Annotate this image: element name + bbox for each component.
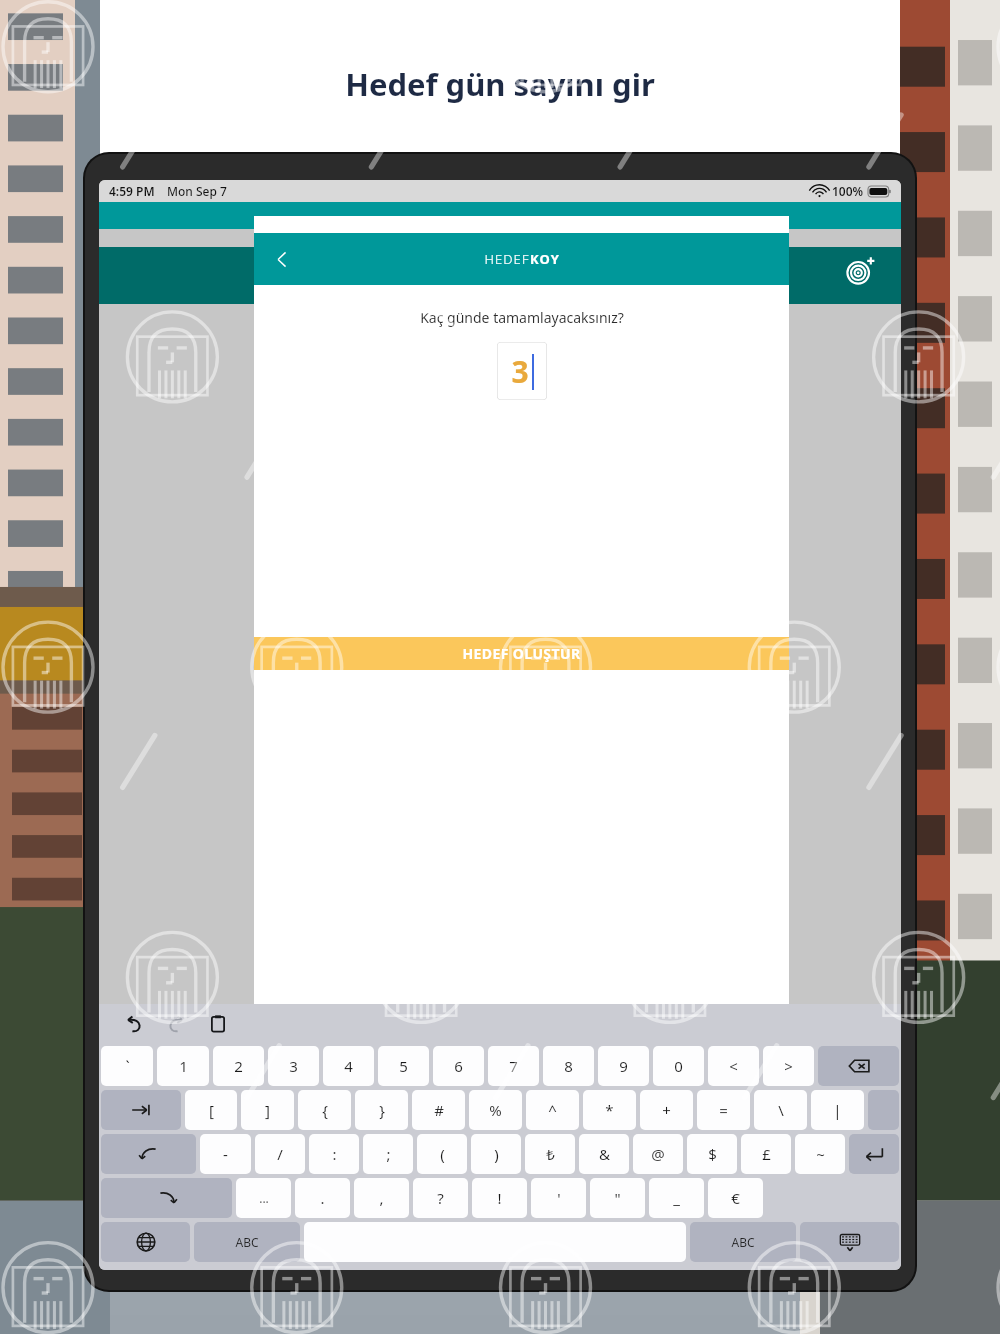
button[interactable]: ABC [194,1222,300,1262]
staticText: < [729,1056,738,1076]
button[interactable]: ABC [690,1222,796,1262]
staticText: 1 [179,1056,188,1076]
button[interactable]: ... [236,1178,291,1218]
staticText: Mon Sep 7 [167,183,227,199]
staticText: [ [209,1100,214,1120]
staticText: / [277,1144,283,1164]
button[interactable]: < [708,1046,759,1086]
button[interactable]: Tab [101,1090,181,1130]
button[interactable]: : [309,1134,359,1174]
button[interactable]: Return [849,1134,899,1174]
button[interactable]: 3 [497,342,547,400]
button[interactable]: Back [262,239,302,279]
button[interactable]: € [708,1178,763,1218]
staticText: ABC [235,1234,259,1250]
button[interactable]: 5 [378,1046,429,1086]
button[interactable]: / [255,1134,305,1174]
button[interactable]: > [763,1046,814,1086]
staticText: _ [673,1188,680,1208]
button[interactable]: . [295,1178,350,1218]
staticText: 0 [674,1056,683,1076]
button[interactable]: ₺ [525,1134,575,1174]
button[interactable]: 8 [543,1046,594,1086]
staticText: € [731,1188,740,1208]
staticText: ABC [731,1234,755,1250]
staticText: % [489,1100,502,1120]
button[interactable]: ) [471,1134,521,1174]
button[interactable]: £ [741,1134,791,1174]
staticText: * [605,1100,614,1120]
button[interactable] [868,1090,899,1130]
staticText: 100% [832,183,864,199]
button[interactable]: | [811,1090,864,1130]
button[interactable]: 0 [653,1046,704,1086]
button[interactable]: % [469,1090,522,1130]
button[interactable]: _ [649,1178,704,1218]
button[interactable]: , [354,1178,409,1218]
button[interactable]: " [590,1178,645,1218]
button[interactable]: } [355,1090,408,1130]
button[interactable]: ^ [526,1090,579,1130]
button[interactable]: Shift right [101,1178,232,1218]
button[interactable]: Undo [117,1007,151,1041]
button[interactable]: ] [241,1090,294,1130]
staticText: " [614,1188,621,1208]
button[interactable]: [ [185,1090,237,1130]
staticText: 9 [619,1056,628,1076]
staticText: ' [557,1188,561,1208]
button[interactable]: 1 [157,1046,209,1086]
button[interactable]: HEDEF OLUŞTUR [254,637,789,670]
staticText: 5 [399,1056,408,1076]
staticText: 2 [234,1056,243,1076]
button[interactable]: - [200,1134,251,1174]
staticText: ` [125,1056,130,1076]
button[interactable]: & [579,1134,629,1174]
button[interactable]: ~ [795,1134,845,1174]
staticText: \ [778,1100,784,1120]
button[interactable]: # [412,1090,465,1130]
button[interactable]: + [640,1090,693,1130]
staticText: # [434,1100,444,1120]
button[interactable]: 3 [268,1046,319,1086]
button[interactable]: Paste [201,1007,235,1041]
button[interactable]: ; [363,1134,413,1174]
button[interactable]: ' [531,1178,586,1218]
button[interactable]: ( [417,1134,467,1174]
button[interactable]: = [697,1090,750,1130]
button[interactable]: ` [101,1046,153,1086]
staticText: > [784,1056,793,1076]
button[interactable]: * [583,1090,636,1130]
staticText: : [332,1144,337,1164]
staticText: } [379,1100,385,1120]
button[interactable]: 9 [598,1046,649,1086]
staticText: ! [497,1188,502,1208]
button[interactable]: Shift [101,1134,196,1174]
button[interactable]: 4 [323,1046,374,1086]
button[interactable]: Backspace [818,1046,899,1086]
button[interactable]: Redo [159,1007,193,1041]
staticText: ] [265,1100,270,1120]
staticText: . [320,1188,325,1208]
staticText: ~ [816,1144,825,1164]
button[interactable]: ? [413,1178,468,1218]
staticText: ₺ [546,1144,555,1164]
button[interactable]: @ [633,1134,683,1174]
staticText: KOY [530,250,560,268]
button[interactable]: 6 [433,1046,484,1086]
button[interactable]: 7 [488,1046,539,1086]
button[interactable]: Globe [101,1222,190,1262]
button[interactable]: 2 [213,1046,264,1086]
button[interactable]: { [298,1090,351,1130]
staticText: 6 [454,1056,463,1076]
button[interactable]: $ [687,1134,737,1174]
staticText: + [662,1100,671,1120]
button[interactable]: Add goal [837,248,883,294]
button[interactable]: Hide keyboard [800,1222,899,1262]
button[interactable]: ! [472,1178,527,1218]
staticText: Hedef gün sayını gir [0,63,1000,105]
staticText: 4:59 PM [109,183,155,199]
staticText: { [322,1100,328,1120]
button[interactable]: \ [754,1090,807,1130]
staticText: HEDEF OLUŞTUR [462,644,581,663]
